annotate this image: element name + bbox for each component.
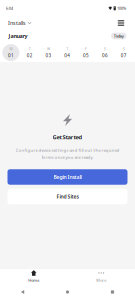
button[interactable]: T — [20, 44, 39, 62]
staticText: forms once you are ready. — [41, 154, 93, 160]
button[interactable]: Today — [111, 33, 126, 39]
staticText: 01 — [8, 52, 14, 59]
staticText: January — [8, 32, 27, 40]
staticText: Begin Install — [53, 173, 81, 180]
button[interactable]: Recents — [90, 287, 135, 297]
staticText: T — [29, 47, 31, 51]
button[interactable]: S — [114, 44, 133, 62]
button[interactable]: F — [77, 44, 95, 62]
button[interactable]: T — [58, 44, 77, 62]
button[interactable]: M — [1, 44, 20, 62]
staticText: 02 — [27, 52, 33, 59]
staticText: Home — [28, 277, 39, 283]
button[interactable]: Find Sites — [7, 189, 127, 204]
staticText: F — [85, 47, 87, 51]
staticText: 04 — [64, 52, 70, 59]
staticText: Configure device settings and fill out t… — [15, 147, 119, 153]
button[interactable]: S — [95, 44, 114, 62]
staticText: Today — [114, 33, 124, 39]
staticText: Installs — [8, 19, 26, 27]
button[interactable]: Home — [45, 287, 90, 297]
staticText: 100% — [117, 6, 126, 11]
staticText: W — [47, 47, 50, 51]
button[interactable]: Menu — [115, 17, 127, 28]
button[interactable]: More — [67, 269, 135, 283]
button[interactable]: Installs — [8, 17, 31, 28]
button[interactable]: Begin Install — [7, 169, 127, 185]
staticText: 6:04 — [6, 6, 13, 11]
staticText: More — [96, 277, 106, 283]
staticText: T — [66, 47, 68, 51]
button[interactable]: Home — [0, 269, 67, 283]
staticText: 03 — [45, 52, 51, 59]
button[interactable]: W — [39, 44, 58, 62]
button[interactable]: Back — [0, 287, 45, 297]
staticText: 05 — [83, 52, 89, 59]
staticText: S — [104, 47, 106, 51]
staticText: 07 — [121, 52, 127, 59]
staticText: Find Sites — [56, 193, 78, 200]
staticText: S — [123, 47, 125, 51]
staticText: M — [9, 47, 12, 51]
staticText: Get Started — [52, 133, 82, 141]
staticText: 06 — [102, 52, 108, 59]
